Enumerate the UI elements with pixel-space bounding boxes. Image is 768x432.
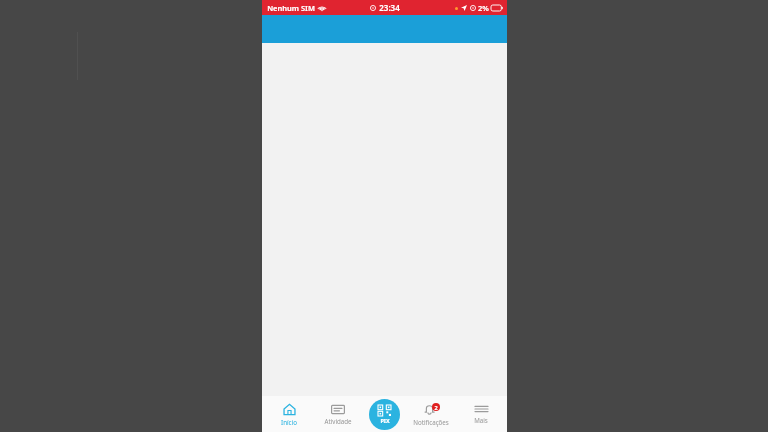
button[interactable]: PIX	[369, 399, 400, 430]
staticText: 2%	[478, 3, 489, 13]
button[interactable]: Mais	[458, 396, 504, 432]
staticText: Início	[281, 418, 297, 426]
button[interactable]: Início	[266, 396, 312, 432]
staticText: Notificações	[413, 418, 449, 426]
staticText: 23:34	[379, 2, 400, 13]
button[interactable]: Atividade	[315, 396, 361, 432]
staticText: Mais	[474, 416, 488, 424]
staticText: PIX	[380, 417, 390, 424]
staticText: Nenhum SIM	[267, 3, 315, 13]
staticText: 2	[434, 404, 438, 411]
staticText: Atividade	[324, 417, 352, 425]
button[interactable]: 2	[408, 396, 454, 432]
